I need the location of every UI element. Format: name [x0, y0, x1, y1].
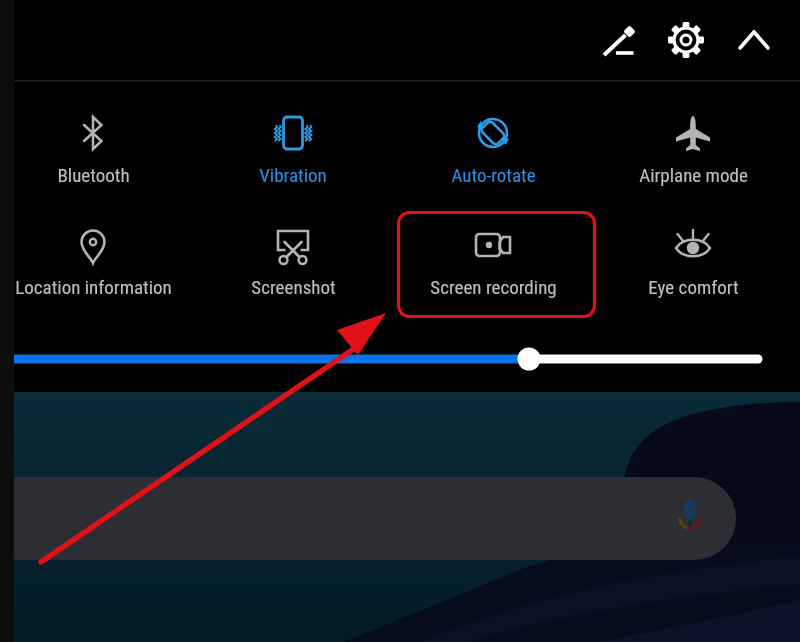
button[interactable]: Bluetooth	[0, 97, 192, 201]
button[interactable]: Vibration	[194, 97, 392, 201]
button[interactable]: Screenshot	[194, 209, 392, 313]
button[interactable]	[0, 477, 736, 560]
button[interactable]: Collapse	[732, 18, 776, 62]
staticText: Location information	[15, 276, 172, 298]
button[interactable]: Airplane mode	[594, 97, 792, 201]
button[interactable]: Location information	[0, 209, 192, 313]
button[interactable]: Auto-rotate	[394, 97, 592, 201]
button[interactable]: Edit	[598, 20, 642, 64]
button[interactable]: Settings	[664, 18, 708, 62]
staticText: Auto-rotate	[451, 164, 536, 186]
staticText: Bluetooth	[57, 164, 130, 186]
staticText: Screen recording	[430, 276, 557, 298]
button[interactable]: Eye comfort	[594, 209, 792, 313]
button[interactable]: Screen recording	[394, 209, 592, 313]
staticText: Eye comfort	[648, 276, 739, 298]
staticText: Airplane mode	[639, 164, 748, 186]
staticText: Screenshot	[251, 276, 336, 298]
staticText: Vibration	[259, 164, 327, 186]
